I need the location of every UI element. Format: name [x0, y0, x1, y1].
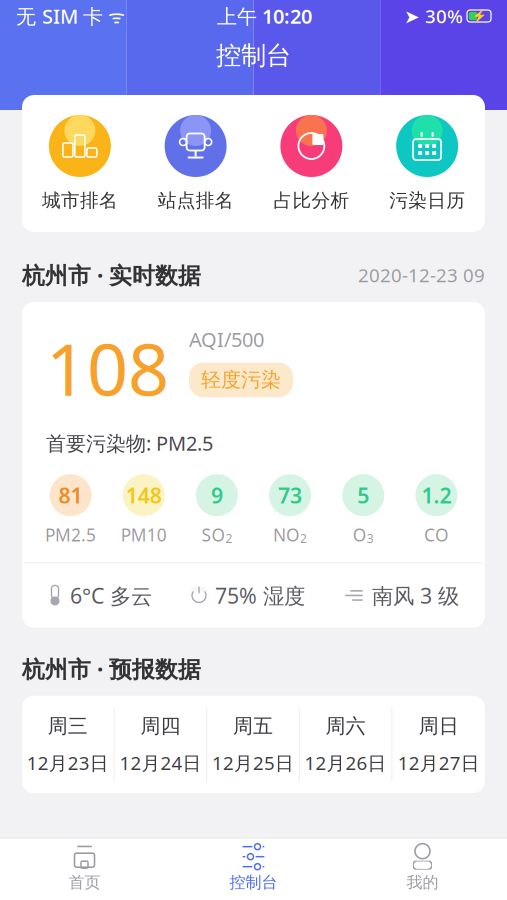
staticText: 12月25日 [212, 750, 294, 775]
staticText: 1.2 [421, 481, 451, 509]
staticText: 12月26日 [305, 750, 387, 775]
staticText: 周四 [140, 714, 180, 738]
staticText: 3 [367, 530, 374, 546]
staticText: 城市排名 [42, 189, 118, 212]
staticText: 污染日历 [389, 189, 465, 212]
staticText: 5 [357, 481, 369, 509]
staticText: O [353, 523, 367, 546]
staticText: 周五 [233, 714, 273, 738]
staticText: CO [424, 523, 449, 546]
staticText: 控制台 [216, 40, 291, 71]
staticText: ᯤ [103, 4, 125, 28]
staticText: 75% 湿度 [215, 581, 305, 610]
button[interactable]: 城市排名 [22, 115, 138, 212]
staticText: 12月23日 [27, 750, 109, 775]
staticText: 周三 [48, 714, 88, 738]
staticText: 81 [59, 481, 83, 509]
staticText: ➤ 30% [404, 4, 463, 28]
staticText: PM2.5 [45, 523, 96, 546]
staticText: 我的 [406, 873, 438, 892]
staticText: 首要污染物: PM2.5 [46, 430, 213, 456]
staticText: 杭州市 · 预报数据 [22, 654, 201, 684]
staticText: 控制台 [229, 873, 277, 892]
staticText: 杭州市 · 实时数据 [22, 260, 201, 290]
staticText: 周日 [419, 714, 459, 738]
staticText: 2020-12-23 09 [358, 263, 485, 287]
staticText: 周六 [326, 714, 366, 738]
staticText: 9 [211, 481, 223, 509]
staticText: 南风 3 级 [372, 581, 459, 610]
staticText: 无 SIM 卡 [16, 3, 103, 29]
staticText: 12月27日 [398, 750, 480, 775]
staticText: 73 [278, 481, 302, 509]
staticText: 占比分析 [273, 189, 349, 212]
button[interactable]: 占比分析 [253, 115, 369, 212]
staticText: 148 [126, 481, 162, 509]
staticText: 首页 [68, 873, 100, 892]
button[interactable]: 我的 [338, 839, 507, 900]
staticText: 轻度污染 [201, 368, 281, 392]
staticText: 上午 10:20 [217, 3, 312, 29]
button[interactable]: 控制台 [169, 839, 338, 900]
staticText: ⚡ [471, 9, 486, 23]
staticText: SO [201, 523, 225, 546]
button[interactable]: 站点排名 [138, 115, 254, 212]
button[interactable]: 首页 [0, 839, 169, 900]
staticText: 2 [300, 530, 307, 546]
button[interactable]: 污染日历 [369, 115, 485, 212]
staticText: 6°C 多云 [70, 581, 152, 610]
staticText: 12月24日 [119, 750, 201, 775]
staticText: NO [273, 523, 300, 546]
staticText: PM10 [121, 523, 167, 546]
staticText: 站点排名 [158, 189, 234, 212]
staticText: 2 [225, 530, 232, 546]
staticText: AQI/500 [189, 326, 264, 353]
staticText: 108 [46, 320, 169, 416]
